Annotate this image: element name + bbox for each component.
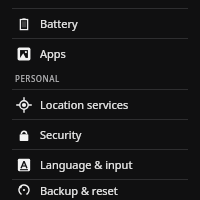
staticText: Battery: [40, 16, 78, 31]
button[interactable]: Apps: [0, 39, 200, 68]
button[interactable]: Security: [0, 120, 200, 149]
staticText: Backup & reset: [40, 183, 118, 198]
staticText: Apps: [40, 46, 66, 61]
button[interactable]: Battery: [0, 9, 200, 38]
staticText: Language & input: [40, 157, 133, 172]
staticText: Security: [40, 127, 82, 142]
button[interactable]: Backup & reset: [0, 180, 200, 200]
button[interactable]: Language & input: [0, 150, 200, 179]
staticText: Location services: [40, 97, 129, 112]
button[interactable]: Location services: [0, 90, 200, 119]
staticText: PERSONAL: [15, 73, 60, 84]
